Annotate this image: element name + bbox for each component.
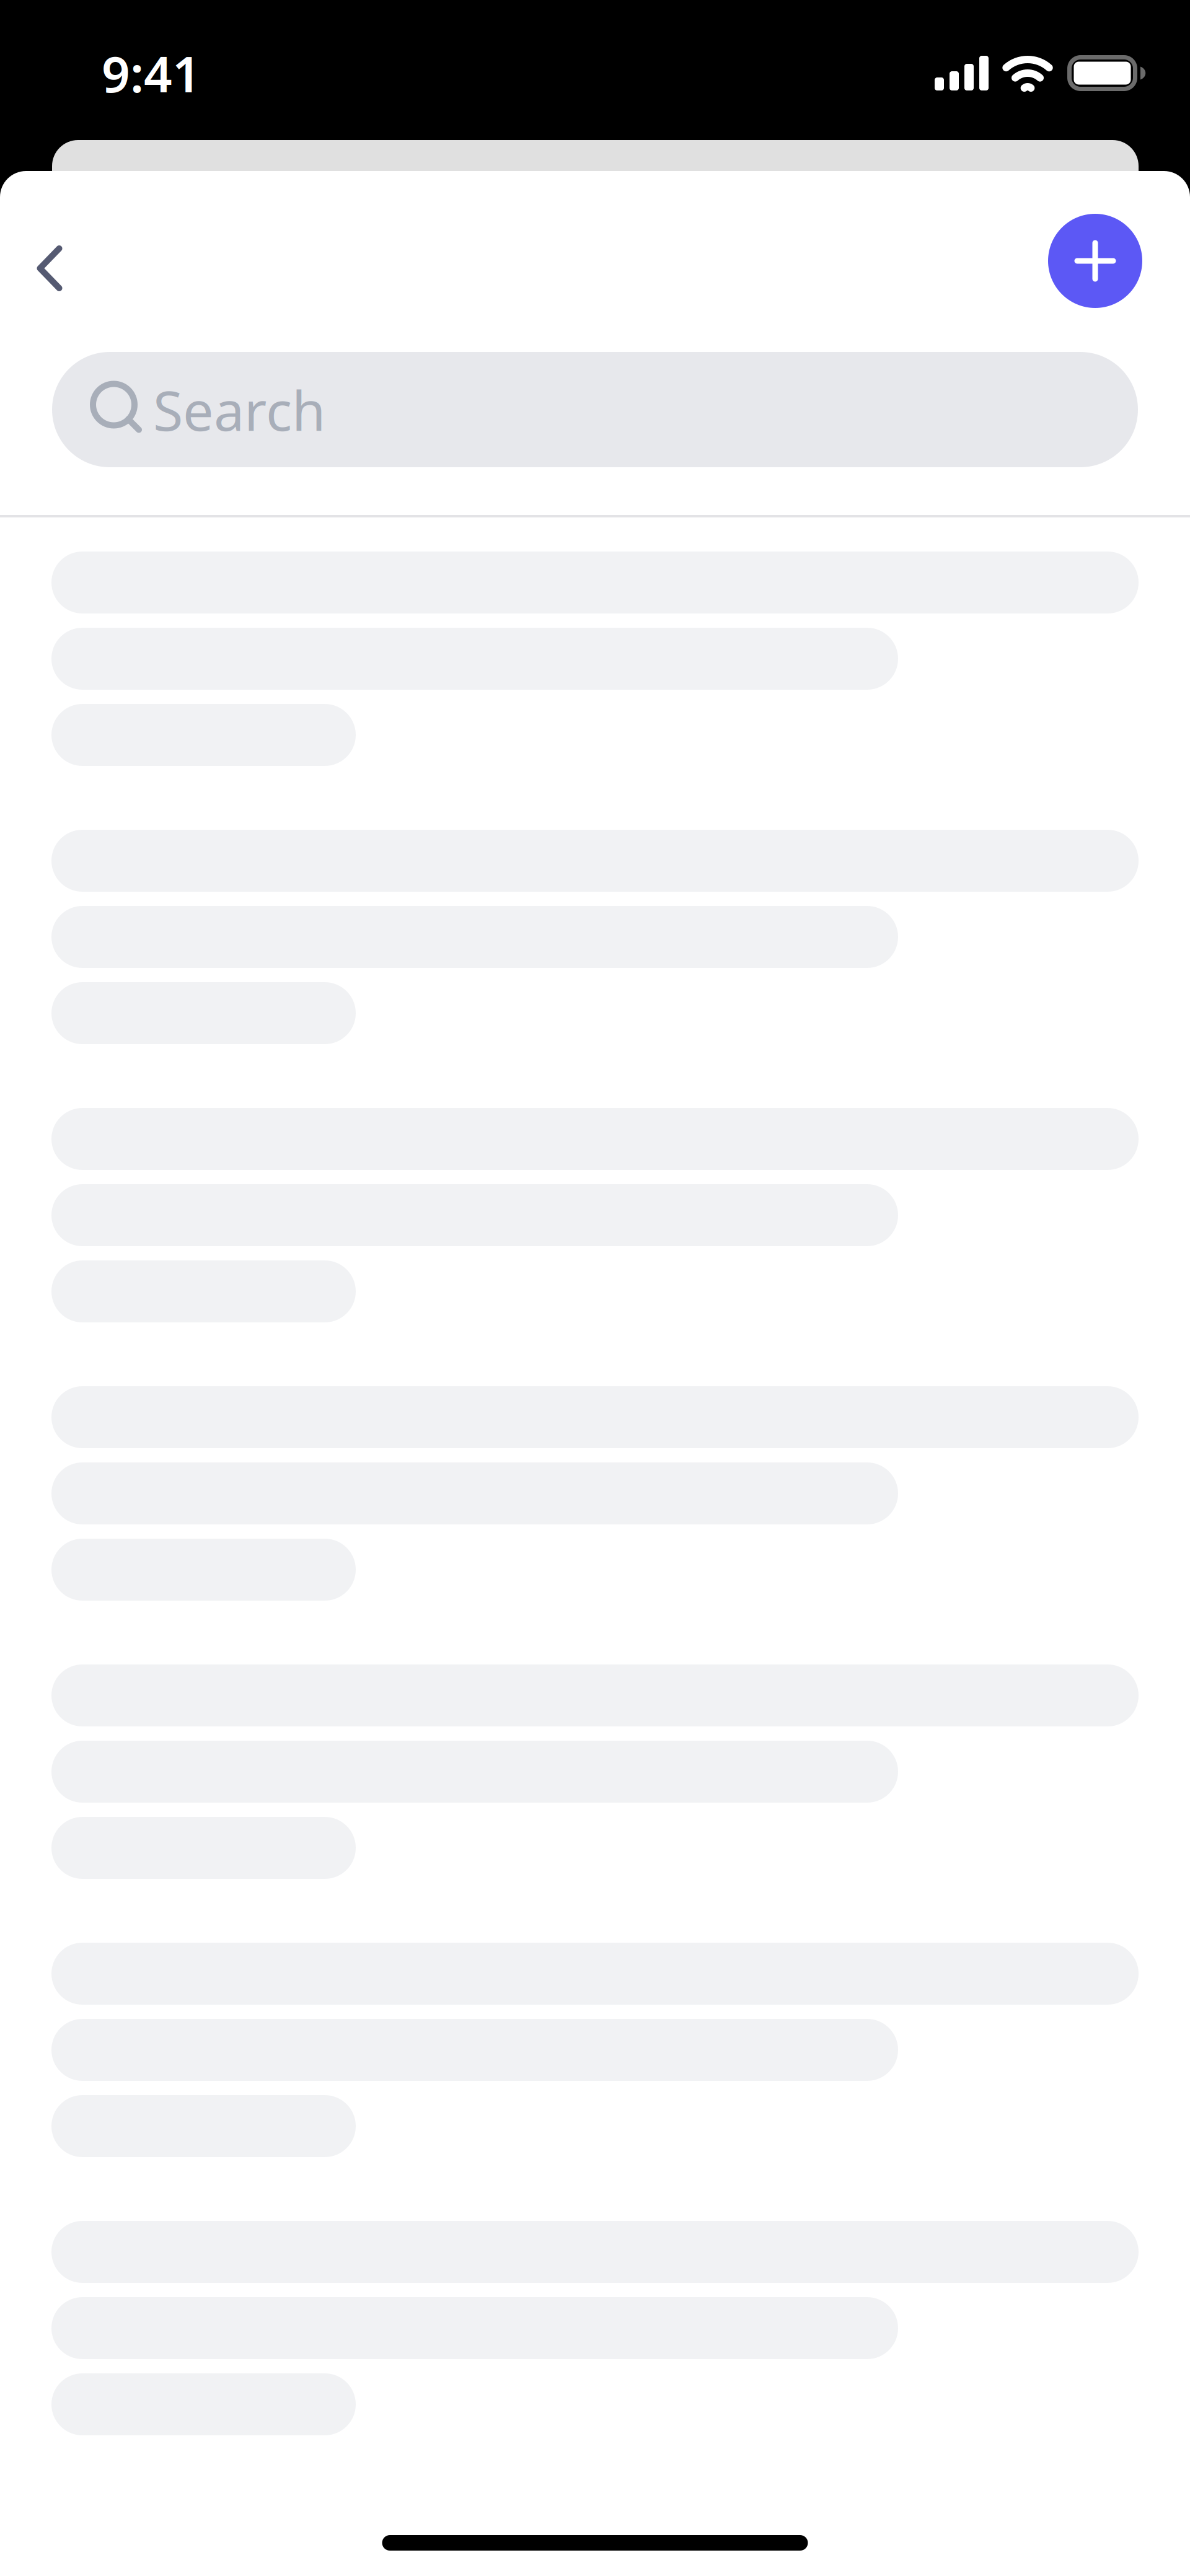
- button[interactable]: Back: [7, 214, 94, 308]
- staticText: Search: [153, 373, 325, 446]
- staticText: 9:41: [102, 40, 201, 106]
- button[interactable]: Add: [1048, 214, 1142, 308]
- button[interactable]: Search: [52, 352, 1138, 467]
